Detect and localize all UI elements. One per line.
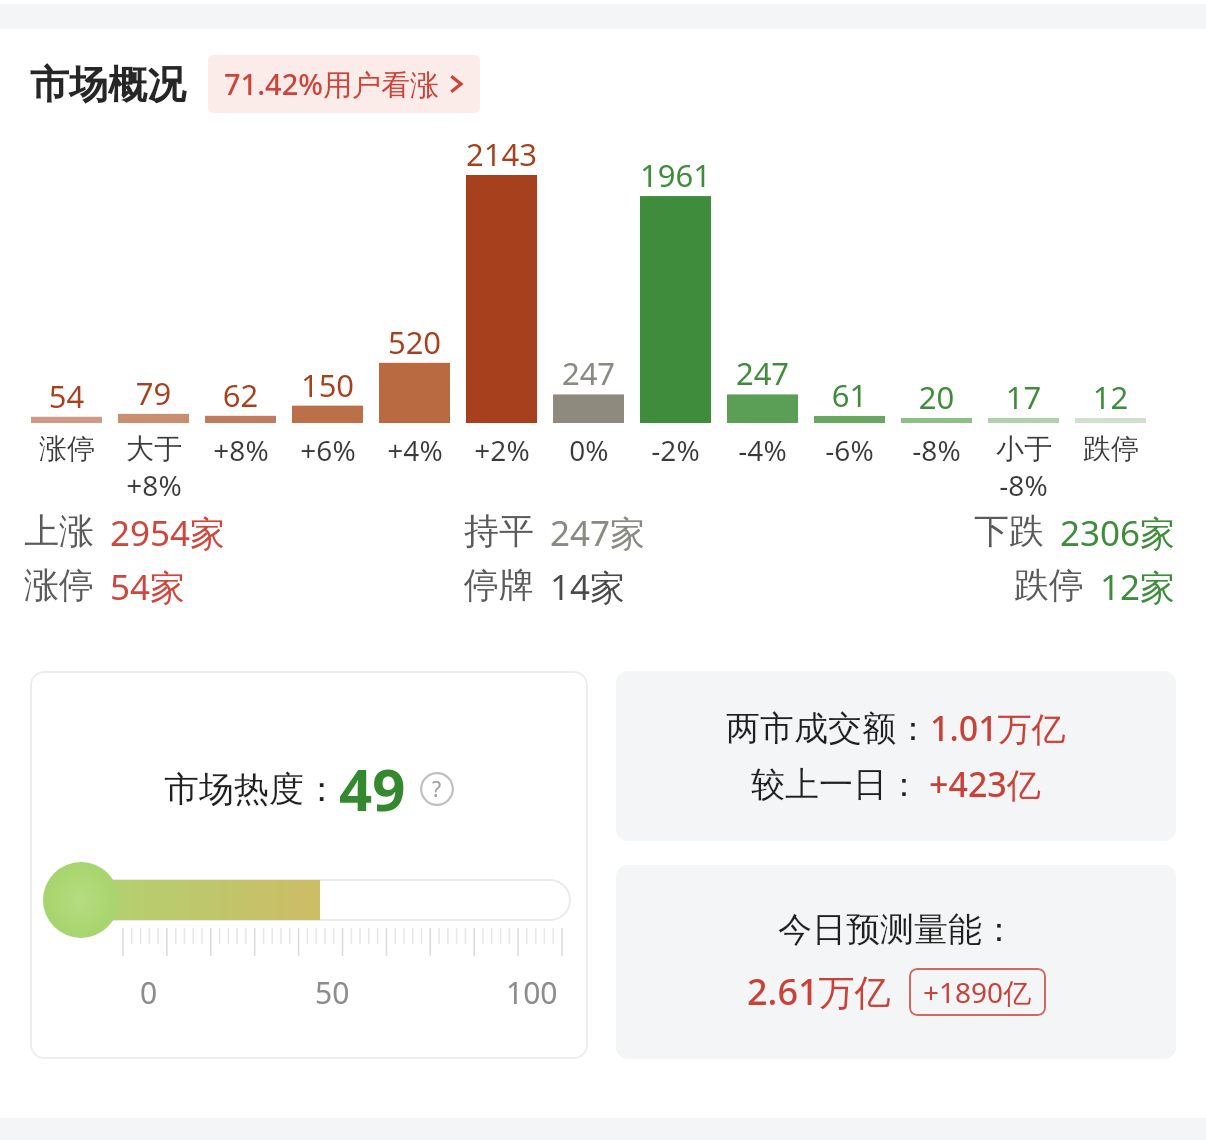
staticText: 247 [719,352,806,394]
staticText: 跌停 [1083,431,1139,466]
staticText: 1.01万亿 [930,705,1066,751]
staticText: +6% [300,431,356,469]
staticText: ? [432,775,442,804]
button[interactable]: 两市成交额： [616,671,1176,841]
staticText: 持平 [464,509,534,553]
staticText: 12家 [1100,563,1176,611]
staticText: 2.61万亿 [747,967,891,1016]
staticText: 17 [980,376,1067,418]
staticText: 停牌 [464,563,534,607]
staticText: -2% [651,431,700,469]
staticText: +1890亿 [923,973,1032,1011]
staticText: 61 [806,374,893,416]
staticText: 49 [339,749,406,828]
button[interactable]: 说明 [420,772,454,806]
staticText: +2% [474,431,530,469]
staticText: 涨停 [39,431,95,466]
staticText: 62 [197,374,284,416]
staticText: 上涨 [24,509,94,553]
staticText: +423亿 [929,761,1041,807]
staticText: 54 [23,375,110,417]
staticText: 247家 [550,509,646,557]
staticText: 2954家 [110,509,226,557]
staticText: 150 [284,364,371,406]
staticText: 涨停 [24,563,94,607]
staticText: 50 [315,972,350,1013]
staticText: +4% [387,431,443,469]
staticText: 520 [371,321,458,363]
button[interactable]: 71.42%用户看涨 [208,55,480,113]
staticText: 79 [110,372,197,414]
staticText: 0% [569,431,609,469]
staticText: 54家 [110,563,186,611]
staticText: +8% [213,431,269,469]
staticText: 0 [140,972,158,1013]
staticText: 小于 [996,431,1052,466]
button[interactable]: 市场热度： [30,671,588,1059]
staticText: 两市成交额： [726,707,930,750]
staticText: 71.42%用户看涨 [224,64,439,104]
staticText: 100 [506,972,558,1013]
staticText: 市场概况 [30,60,186,109]
staticText: 1961 [632,154,719,196]
staticText: 12 [1067,376,1154,418]
staticText: 下跌 [974,509,1044,553]
staticText: 20 [893,376,980,418]
staticText: 今日预测量能： [778,908,1016,951]
staticText: 247 [545,352,632,394]
staticText: 14家 [550,563,626,611]
staticText: -8% [999,466,1048,504]
staticText: -6% [825,431,874,469]
staticText: 2143 [458,133,545,175]
staticText: 较上一日： [751,763,921,806]
staticText: 大于 [126,431,182,466]
staticText: -4% [738,431,787,469]
staticText: -8% [912,431,961,469]
staticText: 2306家 [1060,509,1176,557]
staticText: 跌停 [1014,563,1084,607]
staticText: 市场热度： [164,767,339,811]
staticText: +8% [126,466,182,504]
button[interactable]: 今日预测量能： [616,865,1176,1059]
